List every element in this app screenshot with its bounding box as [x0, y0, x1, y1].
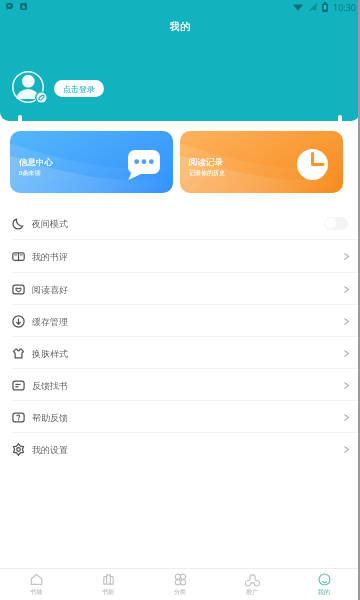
button[interactable]: 信息中心 — [10, 131, 173, 193]
button[interactable]: 夜间模式 — [0, 207, 360, 239]
button[interactable]: 分类 — [144, 569, 216, 600]
button[interactable]: 反馈找书 — [0, 369, 360, 401]
button[interactable]: 我的 — [288, 569, 360, 600]
staticText: 推广 — [246, 588, 258, 596]
button[interactable]: 我的书评 — [0, 240, 360, 272]
staticText: 换肤样式 — [32, 348, 68, 359]
staticText: 夜间模式 — [32, 218, 68, 229]
staticText: 我的 — [318, 588, 330, 596]
staticText: 阅读喜好 — [32, 284, 68, 295]
staticText: 点击登录 — [63, 84, 95, 94]
staticText: 我的书评 — [32, 251, 68, 262]
button[interactable]: 阅读喜好 — [0, 273, 360, 305]
button[interactable]: 点击登录 — [54, 80, 104, 97]
button[interactable]: 书城 — [0, 569, 72, 600]
staticText: 书架 — [102, 588, 114, 596]
button[interactable]: 我的设置 — [0, 433, 360, 465]
staticText: 反馈找书 — [32, 380, 68, 391]
staticText: 阅读记录 — [189, 157, 223, 168]
staticText: 书城 — [30, 588, 42, 596]
staticText: 信息中心 — [19, 157, 53, 168]
button[interactable]: 推广 — [216, 569, 288, 600]
staticText: 我的设置 — [32, 444, 68, 455]
staticText: 帮助反馈 — [32, 412, 68, 423]
staticText: 缓存管理 — [32, 316, 68, 327]
staticText: 10:30 — [333, 1, 357, 13]
staticText: 0条未读 — [19, 169, 41, 177]
button[interactable]: 阅读记录 — [180, 131, 343, 193]
staticText: 记录你的历史 — [189, 169, 225, 177]
staticText: 我的 — [170, 20, 190, 33]
button[interactable]: 帮助反馈 — [0, 401, 360, 433]
button[interactable]: 缓存管理 — [0, 305, 360, 337]
button[interactable]: Night mode toggle — [324, 217, 348, 230]
staticText: 分类 — [174, 588, 186, 596]
button[interactable]: 书架 — [72, 569, 144, 600]
button[interactable]: 换肤样式 — [0, 337, 360, 369]
